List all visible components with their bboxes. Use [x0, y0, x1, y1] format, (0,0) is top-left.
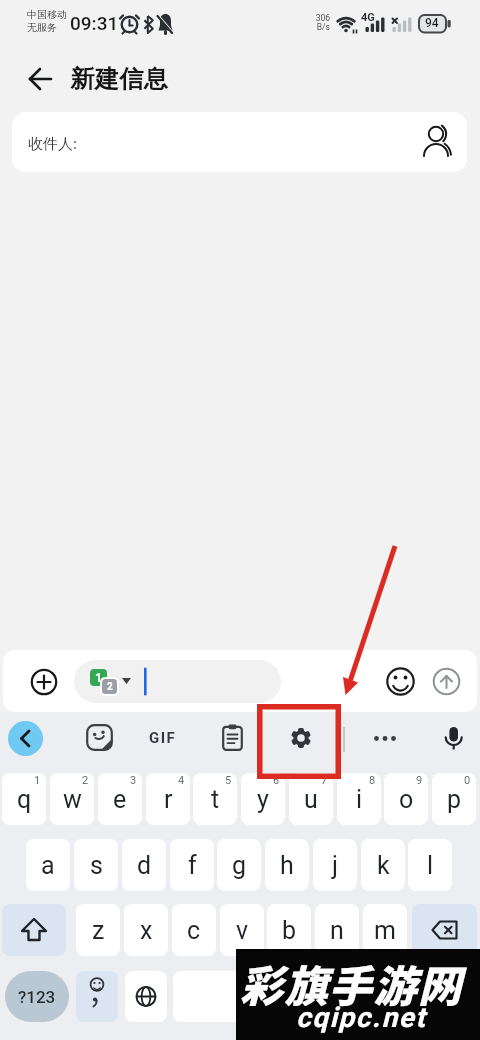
staticText: v	[236, 916, 249, 945]
button[interactable]: a	[26, 839, 70, 891]
button[interactable]: b	[267, 904, 311, 956]
button[interactable]	[76, 971, 118, 1022]
staticText: 彩旗手游网	[240, 952, 463, 1014]
staticText: 3	[130, 774, 137, 787]
button[interactable]: t	[193, 773, 237, 825]
button[interactable]: j	[313, 839, 357, 891]
button[interactable]: r	[146, 773, 190, 825]
button[interactable]: u	[289, 773, 333, 825]
staticText: 09:31	[70, 12, 119, 34]
button[interactable]: e	[98, 773, 142, 825]
button[interactable]: d	[122, 839, 166, 891]
button[interactable]: GIF	[143, 727, 183, 749]
staticText: 4G	[361, 11, 375, 24]
button[interactable]: g	[217, 839, 261, 891]
staticText: ?123	[18, 987, 56, 1007]
staticText: o	[399, 785, 414, 814]
button[interactable]	[28, 666, 60, 698]
button[interactable]: z	[76, 904, 120, 956]
staticText: c	[187, 916, 201, 945]
staticText: w	[63, 785, 82, 814]
button[interactable]: v	[220, 904, 264, 956]
staticText: k	[377, 851, 390, 880]
staticText: x	[140, 916, 153, 945]
staticText: j	[332, 851, 338, 880]
button[interactable]: m	[363, 904, 407, 956]
staticText: i	[356, 785, 363, 814]
button[interactable]	[365, 971, 477, 1022]
staticText: n	[330, 916, 344, 945]
button[interactable]	[8, 721, 43, 756]
staticText: z	[92, 916, 105, 945]
staticText: 6	[273, 774, 280, 787]
staticText: r	[164, 785, 173, 814]
button[interactable]	[412, 904, 477, 956]
staticText: a	[41, 851, 55, 880]
button[interactable]: w	[50, 773, 94, 825]
staticText: f	[188, 851, 197, 880]
button[interactable]	[173, 971, 307, 1022]
staticText: 7	[321, 774, 328, 787]
button[interactable]: h	[265, 839, 309, 891]
staticText: 收件人:	[28, 133, 78, 153]
staticText: b	[282, 916, 297, 945]
button[interactable]: q	[2, 773, 46, 825]
button[interactable]	[370, 726, 400, 751]
button[interactable]	[286, 723, 316, 753]
staticText: 94	[425, 16, 439, 30]
staticText: 4	[178, 774, 185, 787]
staticText: 新建信息	[70, 64, 168, 94]
button[interactable]	[441, 726, 467, 756]
staticText: p	[447, 785, 462, 814]
button[interactable]	[22, 64, 56, 96]
staticText: d	[137, 851, 152, 880]
button[interactable]: f	[170, 839, 214, 891]
staticText: q	[17, 785, 32, 814]
button[interactable]: ?123	[5, 971, 69, 1022]
button[interactable]	[222, 724, 243, 751]
staticText: 1	[95, 671, 102, 685]
staticText: 8	[369, 774, 376, 787]
staticText: 2	[82, 774, 89, 787]
button[interactable]	[86, 724, 113, 751]
button[interactable]: 收件人:	[12, 112, 467, 172]
button[interactable]: l	[408, 839, 452, 891]
button[interactable]: 1	[74, 660, 281, 703]
button[interactable]: k	[361, 839, 405, 891]
staticText: 中国移动	[27, 8, 67, 21]
staticText: 1	[34, 774, 41, 787]
staticText: 0	[464, 774, 471, 787]
button[interactable]	[384, 665, 417, 698]
button[interactable]: x	[124, 904, 168, 956]
staticText: 2	[107, 681, 113, 693]
staticText: 无服务	[27, 21, 57, 34]
staticText: 9	[416, 774, 423, 787]
staticText: u	[304, 785, 318, 814]
staticText: e	[113, 785, 127, 814]
staticText: 5	[225, 774, 232, 787]
staticText: s	[90, 851, 103, 880]
staticText: l	[427, 851, 434, 880]
button[interactable]	[125, 971, 167, 1022]
staticText: GIF	[149, 729, 177, 747]
button[interactable]: c	[172, 904, 216, 956]
button[interactable]: y	[241, 773, 285, 825]
button[interactable]	[431, 666, 462, 697]
staticText: m	[374, 916, 396, 945]
staticText: 306 B/s	[304, 13, 330, 35]
staticText: g	[232, 851, 247, 880]
staticText: cqipc.net	[296, 1001, 427, 1034]
button[interactable]: o	[384, 773, 428, 825]
button[interactable]	[315, 971, 357, 1022]
staticText: y	[257, 785, 269, 814]
button[interactable]: p	[432, 773, 476, 825]
button[interactable]	[2, 904, 66, 956]
button[interactable]: i	[337, 773, 381, 825]
staticText: h	[280, 851, 294, 880]
button[interactable]: s	[74, 839, 118, 891]
staticText: t	[211, 785, 220, 814]
button[interactable]: n	[315, 904, 359, 956]
